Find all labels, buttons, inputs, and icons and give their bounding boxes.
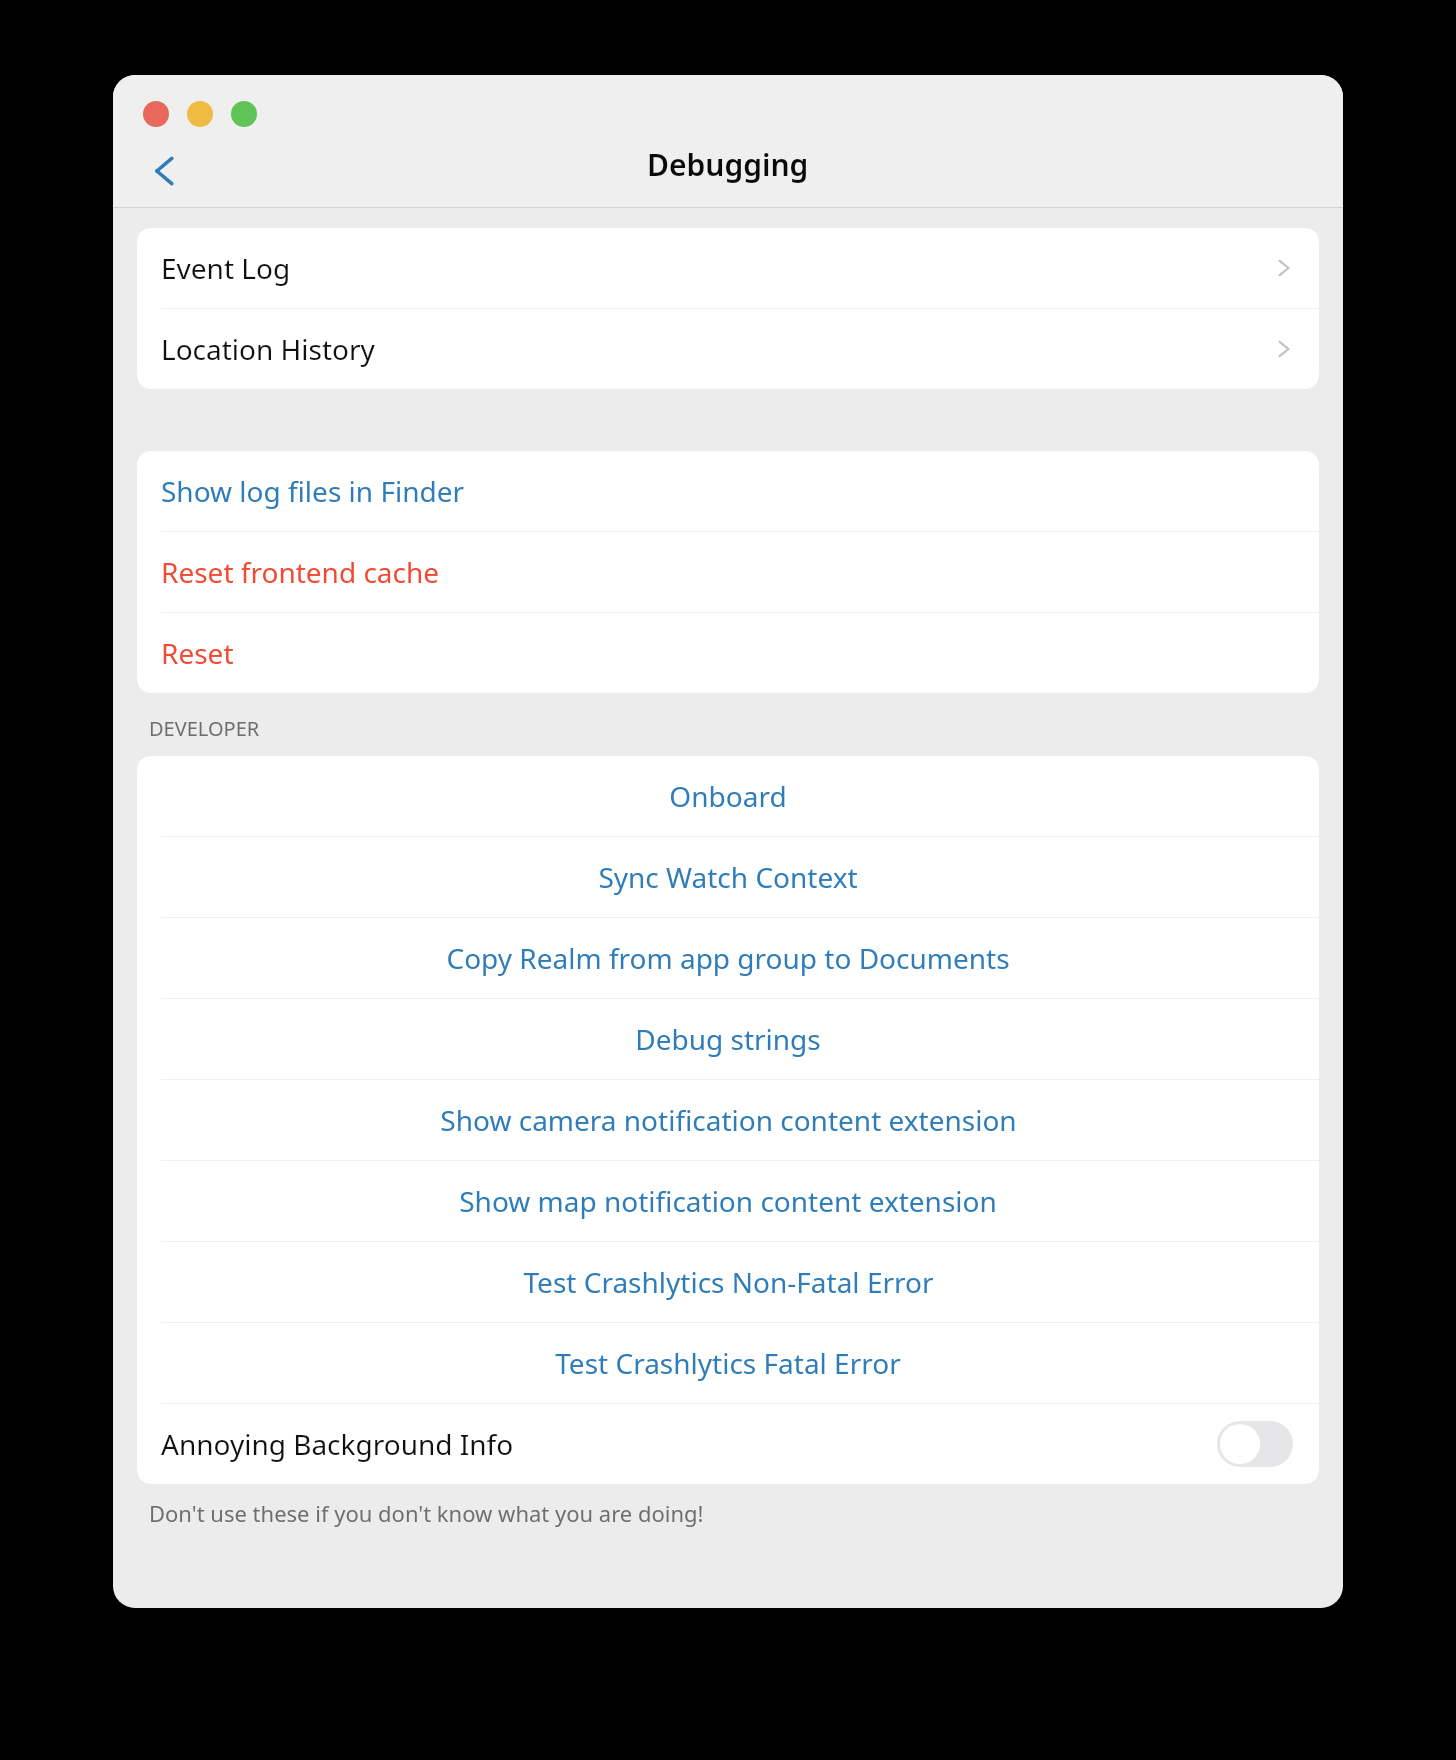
staticText: Don't use these if you don't know what y… — [149, 1498, 704, 1528]
staticText: DEVELOPER — [149, 715, 260, 742]
button[interactable]: Zoom — [231, 101, 257, 127]
button[interactable]: Sync Watch Context — [137, 837, 1319, 917]
button[interactable]: Test Crashlytics Fatal Error — [137, 1323, 1319, 1403]
button[interactable]: Reset frontend cache — [137, 532, 1319, 612]
button[interactable]: Show camera notification content extensi… — [137, 1080, 1319, 1160]
staticText: Test Crashlytics Fatal Error — [555, 1344, 901, 1382]
staticText: Sync Watch Context — [598, 858, 858, 896]
staticText: Debugging — [647, 144, 809, 185]
button[interactable]: Minimize — [187, 101, 213, 127]
button[interactable]: Event Log — [137, 228, 1319, 308]
button[interactable]: Location History — [137, 309, 1319, 389]
staticText: Test Crashlytics Non-Fatal Error — [523, 1263, 934, 1301]
staticText: Location History — [161, 330, 375, 368]
staticText: Reset — [161, 634, 234, 672]
staticText: Show map notification content extension — [459, 1182, 997, 1220]
button[interactable]: Copy Realm from app group to Documents — [137, 918, 1319, 998]
button[interactable]: Onboard — [137, 756, 1319, 836]
staticText: Annoying Background Info — [161, 1425, 514, 1463]
button[interactable]: Test Crashlytics Non-Fatal Error — [137, 1242, 1319, 1322]
button[interactable]: Reset — [137, 613, 1319, 693]
button[interactable]: Close — [143, 101, 169, 127]
staticText: Show camera notification content extensi… — [440, 1101, 1017, 1139]
staticText: Copy Realm from app group to Documents — [446, 939, 1010, 977]
staticText: Show log files in Finder — [161, 472, 465, 510]
staticText: Event Log — [161, 249, 291, 287]
button[interactable]: Back — [127, 135, 203, 207]
staticText: Reset frontend cache — [161, 553, 440, 591]
button[interactable]: Show map notification content extension — [137, 1161, 1319, 1241]
staticText: Onboard — [669, 777, 787, 815]
staticText: Debug strings — [635, 1020, 821, 1058]
button[interactable]: Debug strings — [137, 999, 1319, 1079]
button[interactable]: Annoying Background Info — [137, 1404, 1319, 1484]
button[interactable]: Show log files in Finder — [137, 451, 1319, 531]
